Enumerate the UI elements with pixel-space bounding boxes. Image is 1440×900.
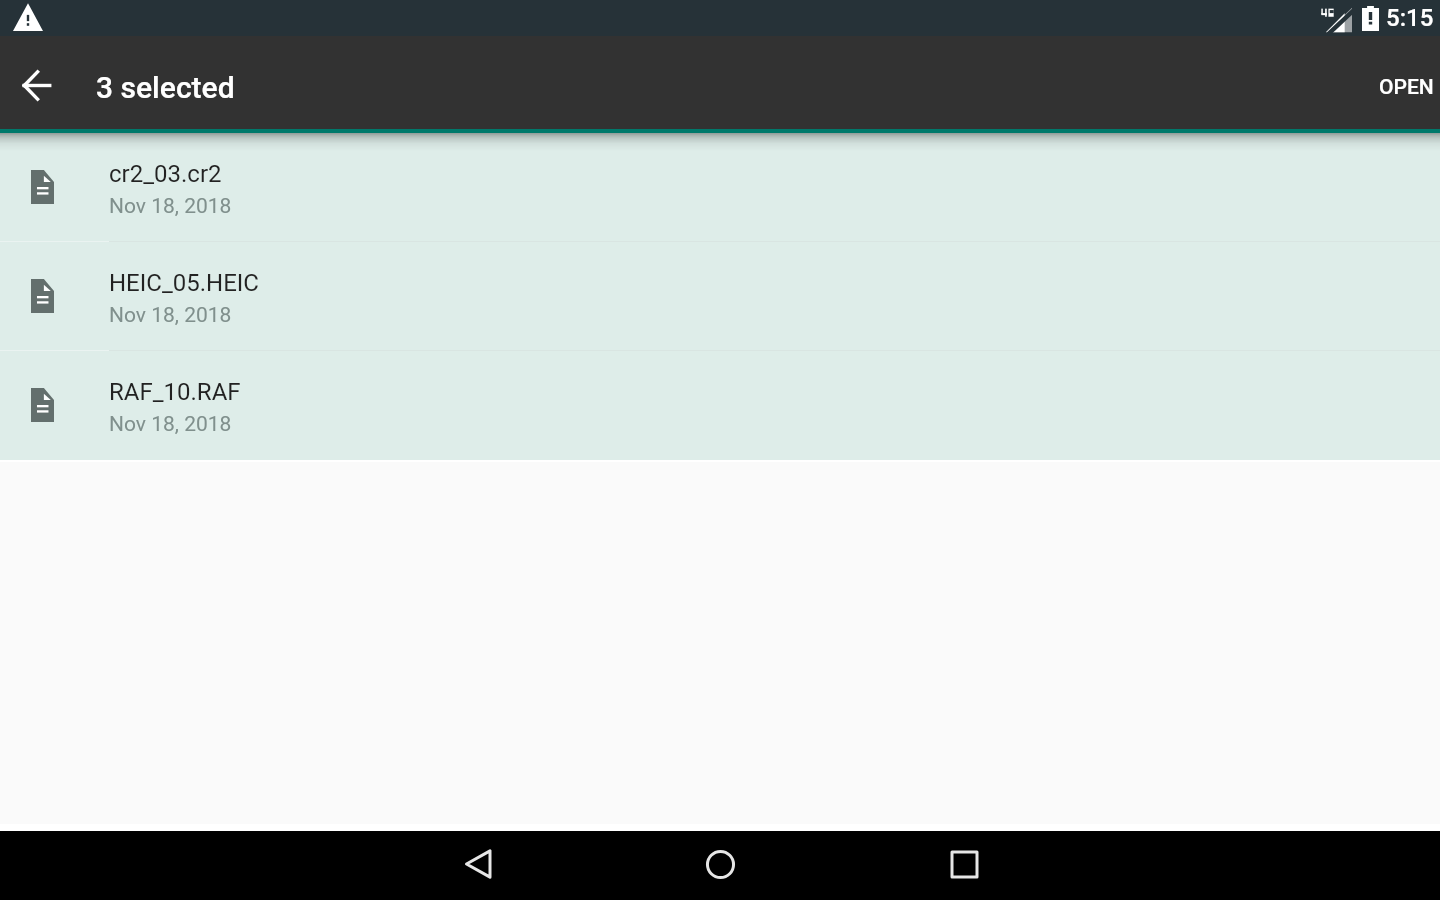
staticText: Nov 18, 2018 <box>109 412 232 437</box>
staticText: HEIC_05.HEIC <box>109 269 259 297</box>
button[interactable]: HEIC_05.HEIC <box>0 242 1440 351</box>
button[interactable]: RAF_10.RAF <box>0 351 1440 460</box>
staticText: 5:15 <box>1386 4 1434 32</box>
button[interactable]: Recents <box>934 834 994 894</box>
staticText: 3 selected <box>96 70 235 105</box>
staticText: Nov 18, 2018 <box>109 303 232 328</box>
button[interactable]: Back <box>0 50 66 116</box>
button[interactable]: Back <box>448 834 508 894</box>
button[interactable]: Home <box>690 834 750 894</box>
staticText: Nov 18, 2018 <box>109 194 232 219</box>
button[interactable]: OPEN <box>1367 50 1440 115</box>
staticText: cr2_03.cr2 <box>109 160 222 188</box>
staticText: OPEN <box>1379 75 1434 100</box>
staticText: RAF_10.RAF <box>109 378 241 406</box>
button[interactable]: cr2_03.cr2 <box>0 133 1440 242</box>
